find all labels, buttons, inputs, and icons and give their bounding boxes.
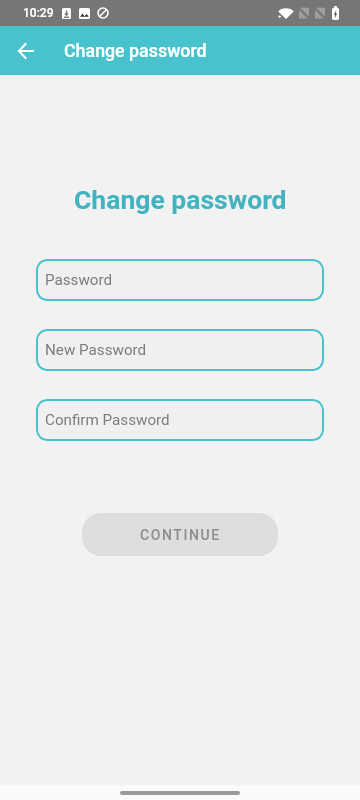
staticText: Change password (74, 184, 287, 215)
button[interactable]: Confirm Password (36, 399, 324, 441)
staticText: New Password (45, 341, 147, 359)
button[interactable]: New Password (36, 329, 324, 371)
button[interactable]: CONTINUE (82, 513, 278, 556)
staticText: CONTINUE (140, 527, 221, 543)
button[interactable]: Back (11, 37, 39, 65)
staticText: Confirm Password (45, 411, 170, 429)
button[interactable]: Password (36, 259, 324, 301)
staticText: Password (45, 271, 113, 289)
other: Home (120, 791, 240, 795)
staticText: Change password (64, 40, 207, 61)
staticText: 10:29 (23, 6, 54, 20)
